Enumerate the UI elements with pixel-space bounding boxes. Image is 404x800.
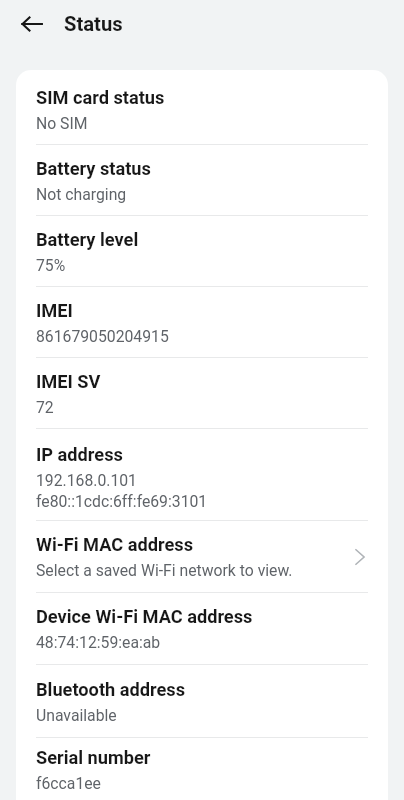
- button[interactable]: Back: [10, 2, 54, 46]
- staticText: IMEI SV: [36, 371, 101, 392]
- button[interactable]: Battery status: [16, 145, 388, 216]
- staticText: 192.168.0.101 fe80::1cdc:6ff:fe69:3101: [36, 471, 208, 510]
- staticText: Battery status: [36, 158, 151, 179]
- staticText: Not charging: [36, 185, 127, 203]
- button[interactable]: Serial number: [16, 738, 388, 800]
- staticText: Device Wi-Fi MAC address: [36, 606, 253, 627]
- button[interactable]: Device Wi-Fi MAC address: [16, 593, 388, 665]
- button[interactable]: Wi-Fi MAC address: [16, 521, 388, 593]
- staticText: Serial number: [36, 747, 151, 768]
- staticText: Unavailable: [36, 706, 117, 724]
- staticText: SIM card status: [36, 87, 165, 108]
- staticText: IMEI: [36, 300, 73, 321]
- button[interactable]: SIM card status: [16, 74, 388, 145]
- staticText: Battery level: [36, 229, 139, 250]
- staticText: 48:74:12:59:ea:ab: [36, 633, 161, 651]
- button[interactable]: Bluetooth address: [16, 665, 388, 738]
- button[interactable]: IP address: [16, 429, 388, 521]
- staticText: Bluetooth address: [36, 679, 186, 700]
- button[interactable]: IMEI: [16, 287, 388, 358]
- button[interactable]: Battery level: [16, 216, 388, 287]
- staticText: 861679050204915: [36, 327, 169, 345]
- staticText: Select a saved Wi-Fi network to view.: [36, 561, 293, 579]
- staticText: f6cca1ee: [36, 774, 101, 792]
- button[interactable]: IMEI SV: [16, 358, 388, 429]
- staticText: 75%: [36, 256, 66, 274]
- staticText: Wi-Fi MAC address: [36, 534, 194, 555]
- staticText: IP address: [36, 444, 123, 465]
- staticText: Status: [64, 12, 123, 36]
- staticText: No SIM: [36, 114, 88, 132]
- staticText: 72: [36, 398, 54, 416]
